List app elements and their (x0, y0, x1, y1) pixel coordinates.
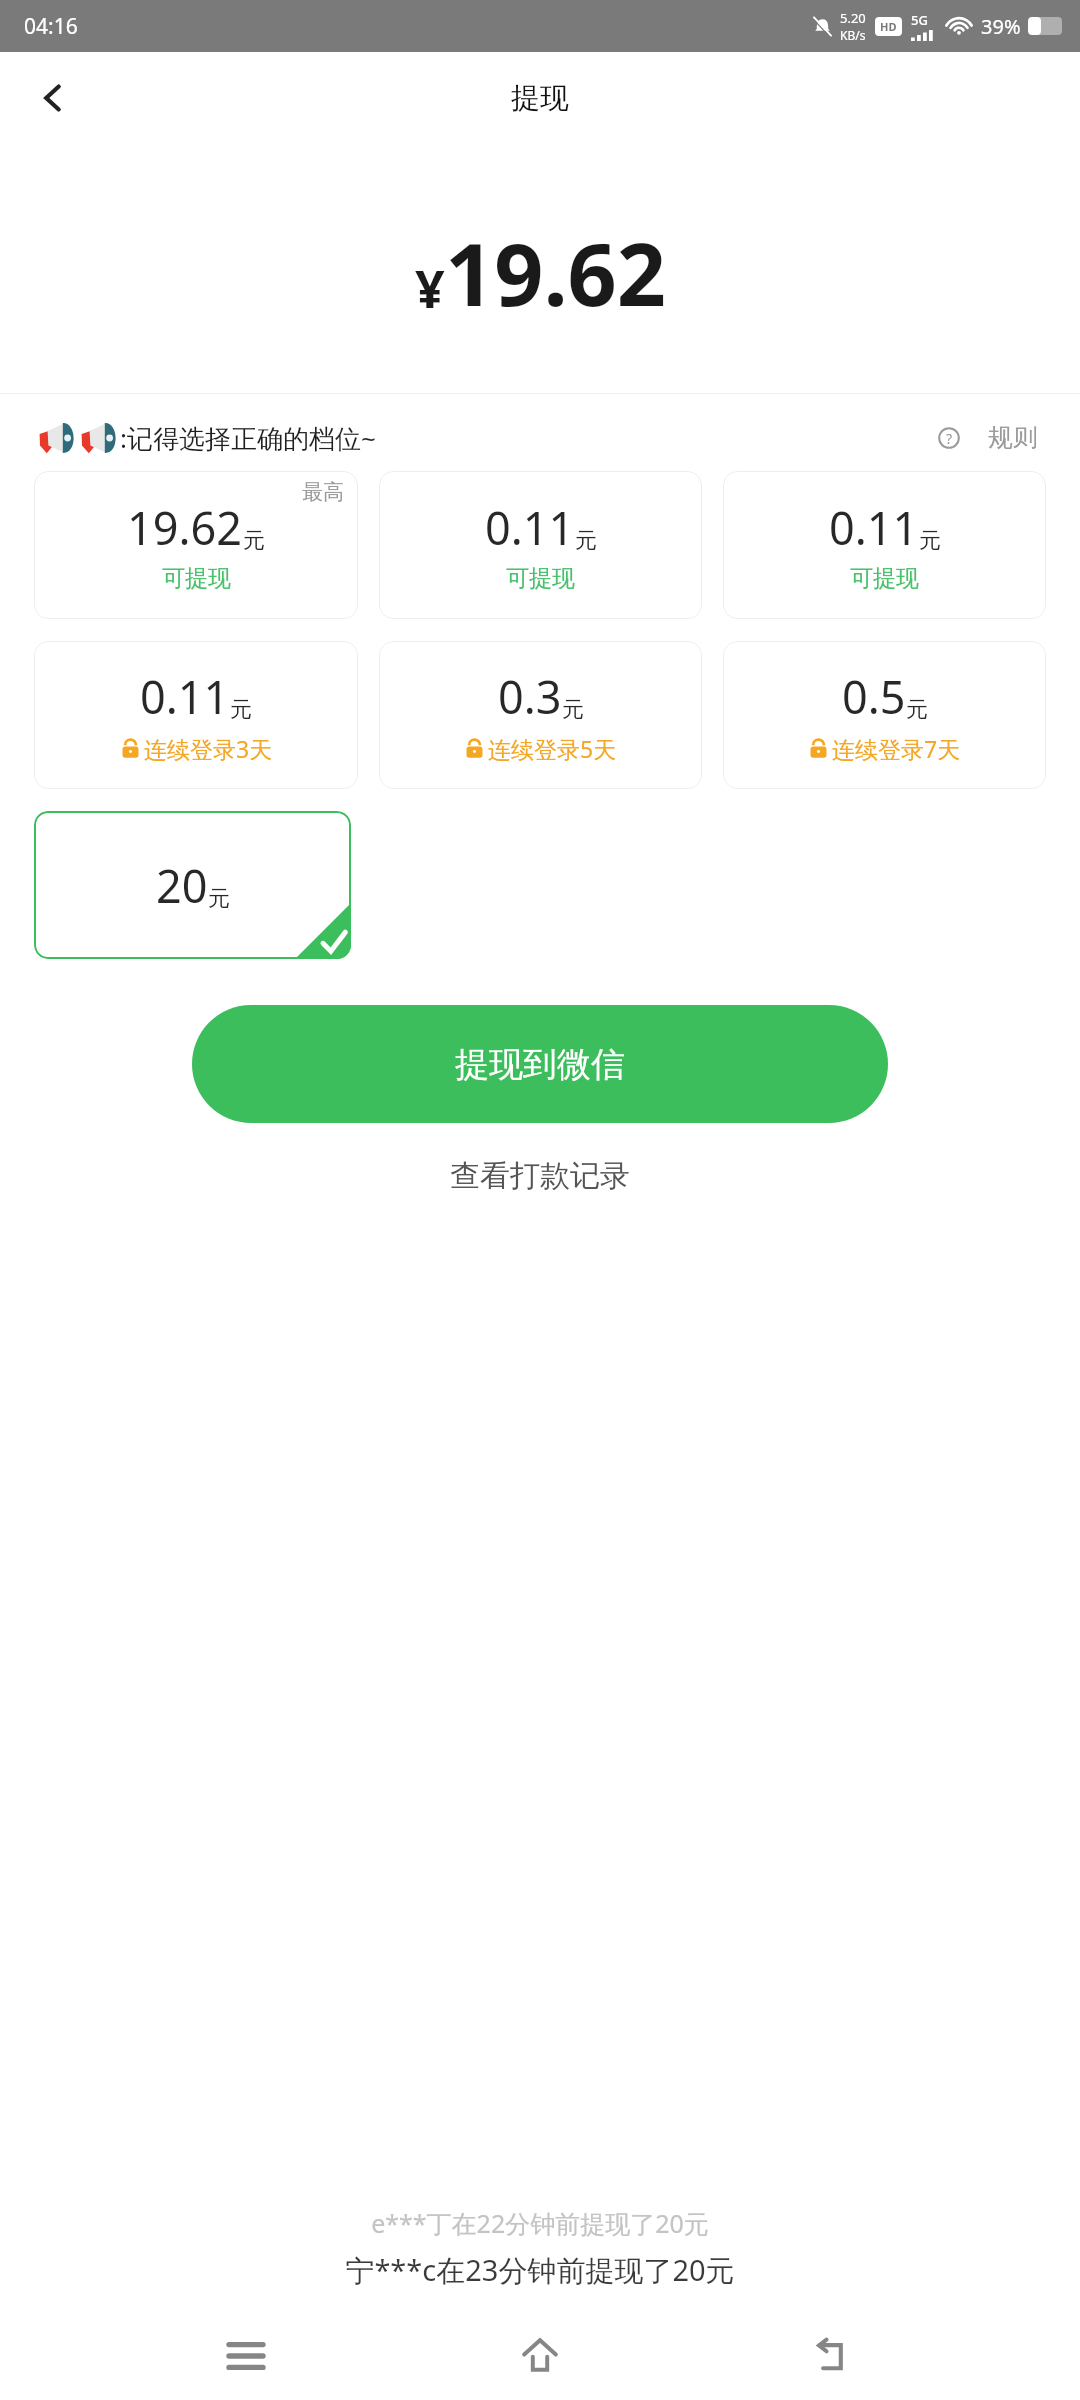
staticText: 元 (562, 696, 584, 724)
staticText: 连续登录5天 (488, 733, 617, 764)
button[interactable]: 0.11 (34, 641, 358, 789)
staticText: 可提现 (850, 564, 919, 593)
button[interactable]: 提现到微信 (192, 1005, 888, 1123)
staticText: 39% (981, 13, 1021, 40)
button[interactable]: 0.3 (379, 641, 702, 789)
staticText: 5G (911, 11, 928, 29)
staticText: 19.62 (127, 497, 243, 558)
staticText: e***丁在22分钟前提现了20元 (371, 2206, 709, 2240)
button[interactable]: 查看打款记录 (432, 1149, 648, 1203)
button[interactable]: Back (786, 2312, 882, 2400)
staticText: 0.11 (485, 497, 575, 558)
button[interactable]: 20 (34, 811, 351, 959)
staticText: 0.5 (842, 666, 906, 727)
staticText: 可提现 (162, 564, 231, 593)
button[interactable]: Recents (198, 2312, 294, 2400)
staticText: 宁***c在23分钟前提现了20元 (345, 2250, 735, 2290)
staticText: 连续登录7天 (832, 733, 961, 764)
staticText: 元 (208, 885, 230, 913)
staticText: 最高 (302, 479, 344, 505)
button[interactable]: 0.11 (723, 471, 1046, 619)
staticText: ? (946, 429, 953, 448)
staticText: 元 (906, 696, 928, 724)
staticText: 查看打款记录 (450, 1157, 630, 1195)
button[interactable]: 0.5 (723, 641, 1046, 789)
staticText: 元 (243, 527, 265, 555)
staticText: 0.3 (498, 666, 562, 727)
button[interactable]: ? (934, 418, 1042, 457)
staticText: KB/s (840, 27, 866, 43)
staticText: 元 (575, 527, 597, 555)
staticText: HD (880, 19, 897, 34)
staticText: 0.11 (140, 666, 230, 727)
staticText: 元 (230, 696, 252, 724)
staticText: 元 (919, 527, 941, 555)
button[interactable]: Home (492, 2312, 588, 2400)
staticText: 提现到微信 (455, 1043, 625, 1086)
staticText: 19.62 (445, 214, 666, 331)
staticText: 连续登录3天 (144, 733, 273, 764)
staticText: 20 (156, 855, 208, 916)
staticText: 5.20 (840, 9, 866, 27)
staticText: 0.11 (829, 497, 919, 558)
staticText: :记得选择正确的档位~ (120, 420, 376, 456)
staticText: 规则 (988, 422, 1038, 453)
button[interactable]: 最高 (34, 471, 358, 619)
staticText: 04:16 (24, 12, 78, 41)
button[interactable]: Back (22, 67, 84, 129)
staticText: 可提现 (506, 564, 575, 593)
staticText: ¥ (415, 252, 445, 323)
button[interactable]: 0.11 (379, 471, 702, 619)
staticText: 提现 (511, 80, 569, 117)
